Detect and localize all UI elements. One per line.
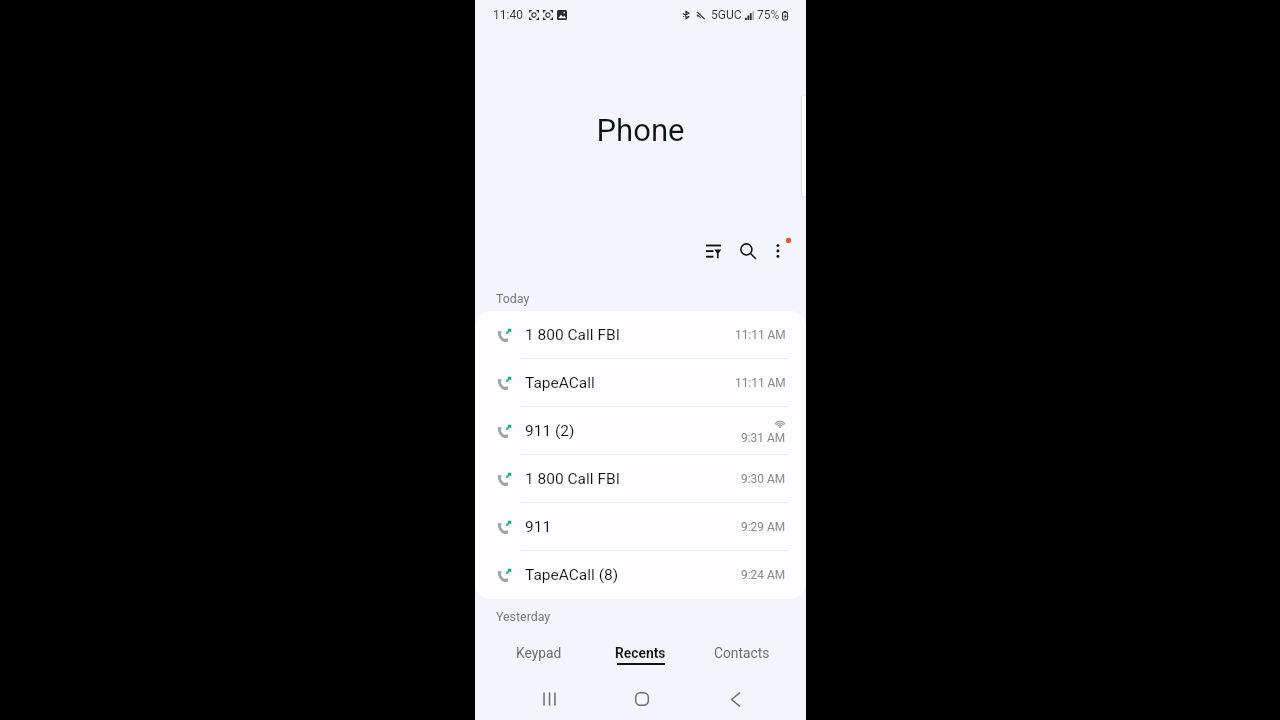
- button[interactable]: 911: [475, 503, 806, 551]
- staticText: 911 (2): [525, 422, 575, 440]
- staticText: 9:24 AM: [741, 568, 786, 582]
- staticText: Contacts: [714, 645, 770, 661]
- button[interactable]: Home: [620, 682, 664, 716]
- button[interactable]: Contacts: [691, 640, 793, 672]
- staticText: TapeACall (8): [525, 566, 619, 584]
- staticText: Phone: [475, 112, 806, 148]
- staticText: 11:40: [493, 8, 523, 22]
- button[interactable]: 1 800 Call FBI: [475, 311, 806, 359]
- button[interactable]: Sort: [696, 234, 730, 268]
- staticText: Yesterday: [496, 609, 551, 624]
- staticText: Recents: [615, 645, 666, 661]
- staticText: 11:11 AM: [735, 376, 786, 390]
- staticText: 9:29 AM: [741, 520, 786, 534]
- staticText: 911: [525, 518, 552, 536]
- staticText: Keypad: [516, 645, 562, 661]
- staticText: 1 800 Call FBI: [525, 326, 620, 344]
- button[interactable]: Keypad: [488, 640, 589, 672]
- staticText: 5GUC: [711, 8, 742, 22]
- staticText: Today: [496, 291, 530, 306]
- staticText: 11:11 AM: [735, 328, 786, 342]
- staticText: 9:31 AM: [741, 431, 786, 445]
- button[interactable]: Back: [713, 682, 757, 716]
- button[interactable]: More options: [762, 234, 796, 268]
- button[interactable]: Recent apps: [527, 682, 571, 716]
- staticText: 1 800 Call FBI: [525, 470, 620, 488]
- button[interactable]: Recents: [589, 640, 691, 672]
- button[interactable]: TapeACall (8): [475, 551, 806, 599]
- button[interactable]: TapeACall: [475, 359, 806, 407]
- button[interactable]: 1 800 Call FBI: [475, 455, 806, 503]
- button[interactable]: Search: [731, 234, 765, 268]
- staticText: 75%: [757, 8, 780, 22]
- staticText: TapeACall: [525, 374, 595, 392]
- staticText: 9:30 AM: [741, 472, 786, 486]
- button[interactable]: 911 (2): [475, 407, 806, 455]
